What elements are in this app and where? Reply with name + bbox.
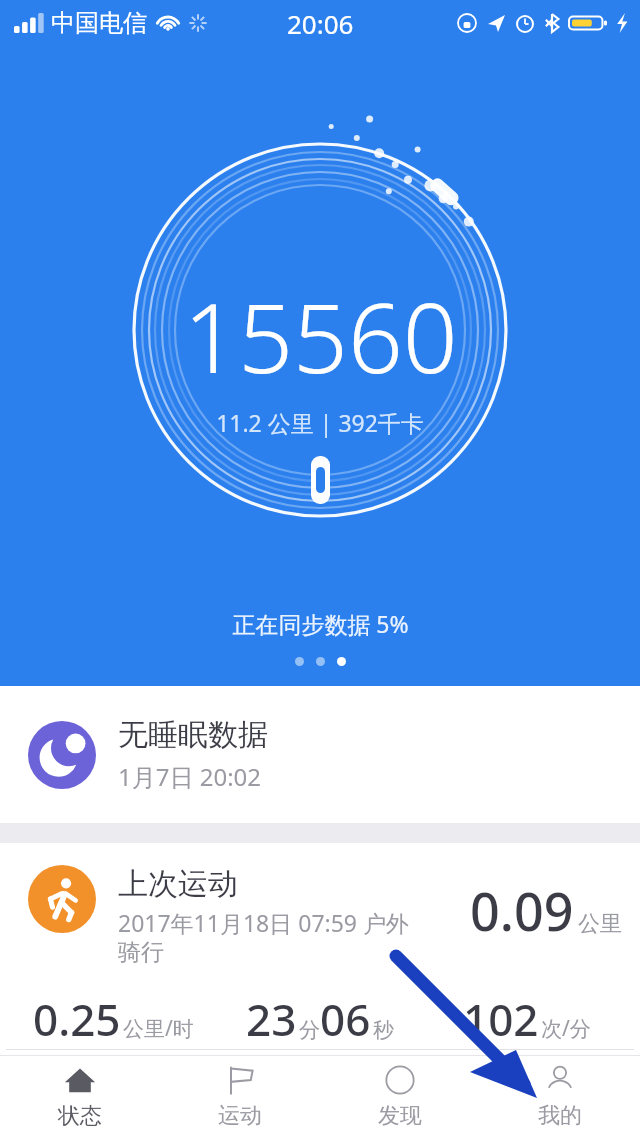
button[interactable]: 无睡眠数据 <box>0 686 640 823</box>
staticText: 无睡眠数据 <box>118 716 268 754</box>
button[interactable]: 状态 <box>0 1056 160 1136</box>
staticText: 次/分 <box>541 1014 591 1043</box>
staticText: 公里/时 <box>123 1014 194 1043</box>
staticText: 上次运动 <box>118 865 238 903</box>
staticText: 状态 <box>58 1102 102 1130</box>
staticText: 分 <box>299 1017 320 1043</box>
staticText: 20:06 <box>287 6 354 41</box>
staticText: 15560 <box>183 270 458 401</box>
staticText: 2017年11月18日 07:59 户外 <box>118 907 409 938</box>
staticText: 运动 <box>218 1102 262 1130</box>
staticText: 秒 <box>373 1017 394 1043</box>
staticText: 正在同步数据 5% <box>232 608 409 639</box>
staticText: 发现 <box>378 1102 422 1130</box>
button[interactable]: 上次运动 <box>0 843 640 1050</box>
button[interactable]: 运动 <box>160 1056 320 1136</box>
staticText: 0.25 <box>33 989 121 1049</box>
staticText: 公里 <box>578 910 622 938</box>
staticText: 我的 <box>538 1102 582 1130</box>
staticText: 骑行 <box>118 938 164 967</box>
staticText: 23 <box>246 989 297 1049</box>
staticText: 中国电信 <box>51 8 147 38</box>
button[interactable]: 我的 <box>480 1056 640 1136</box>
staticText: 1月7日 20:02 <box>118 760 262 793</box>
staticText: 11.2 公里 | 392千卡 <box>216 407 424 438</box>
button[interactable]: 发现 <box>320 1056 480 1136</box>
staticText: 0.09 <box>470 875 574 946</box>
staticText: 06 <box>320 989 371 1049</box>
staticText: 102 <box>463 989 539 1049</box>
